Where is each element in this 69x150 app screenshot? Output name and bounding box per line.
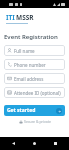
staticText: MSSR [16, 13, 34, 22]
staticText: Get started [7, 107, 36, 114]
button[interactable]: Get started [4, 105, 65, 116]
button[interactable]: Full name [4, 45, 65, 56]
button[interactable]: Email address (optional) [4, 73, 65, 84]
staticText: Event Registration [4, 33, 58, 41]
button[interactable]: Attendee ID (optional) [4, 87, 65, 98]
staticText: Email address (optional) [14, 76, 62, 82]
button[interactable]: Phone number [4, 59, 65, 70]
button[interactable]: Back [10, 140, 17, 147]
button[interactable]: Home [31, 140, 38, 147]
staticText: Phone number [14, 62, 46, 68]
staticText: Secure & private [24, 119, 51, 124]
button[interactable]: Recent apps [52, 140, 59, 147]
staticText: Full name [14, 48, 35, 54]
staticText: Attendee ID (optional) [14, 90, 61, 96]
staticText: ITI [6, 13, 15, 22]
